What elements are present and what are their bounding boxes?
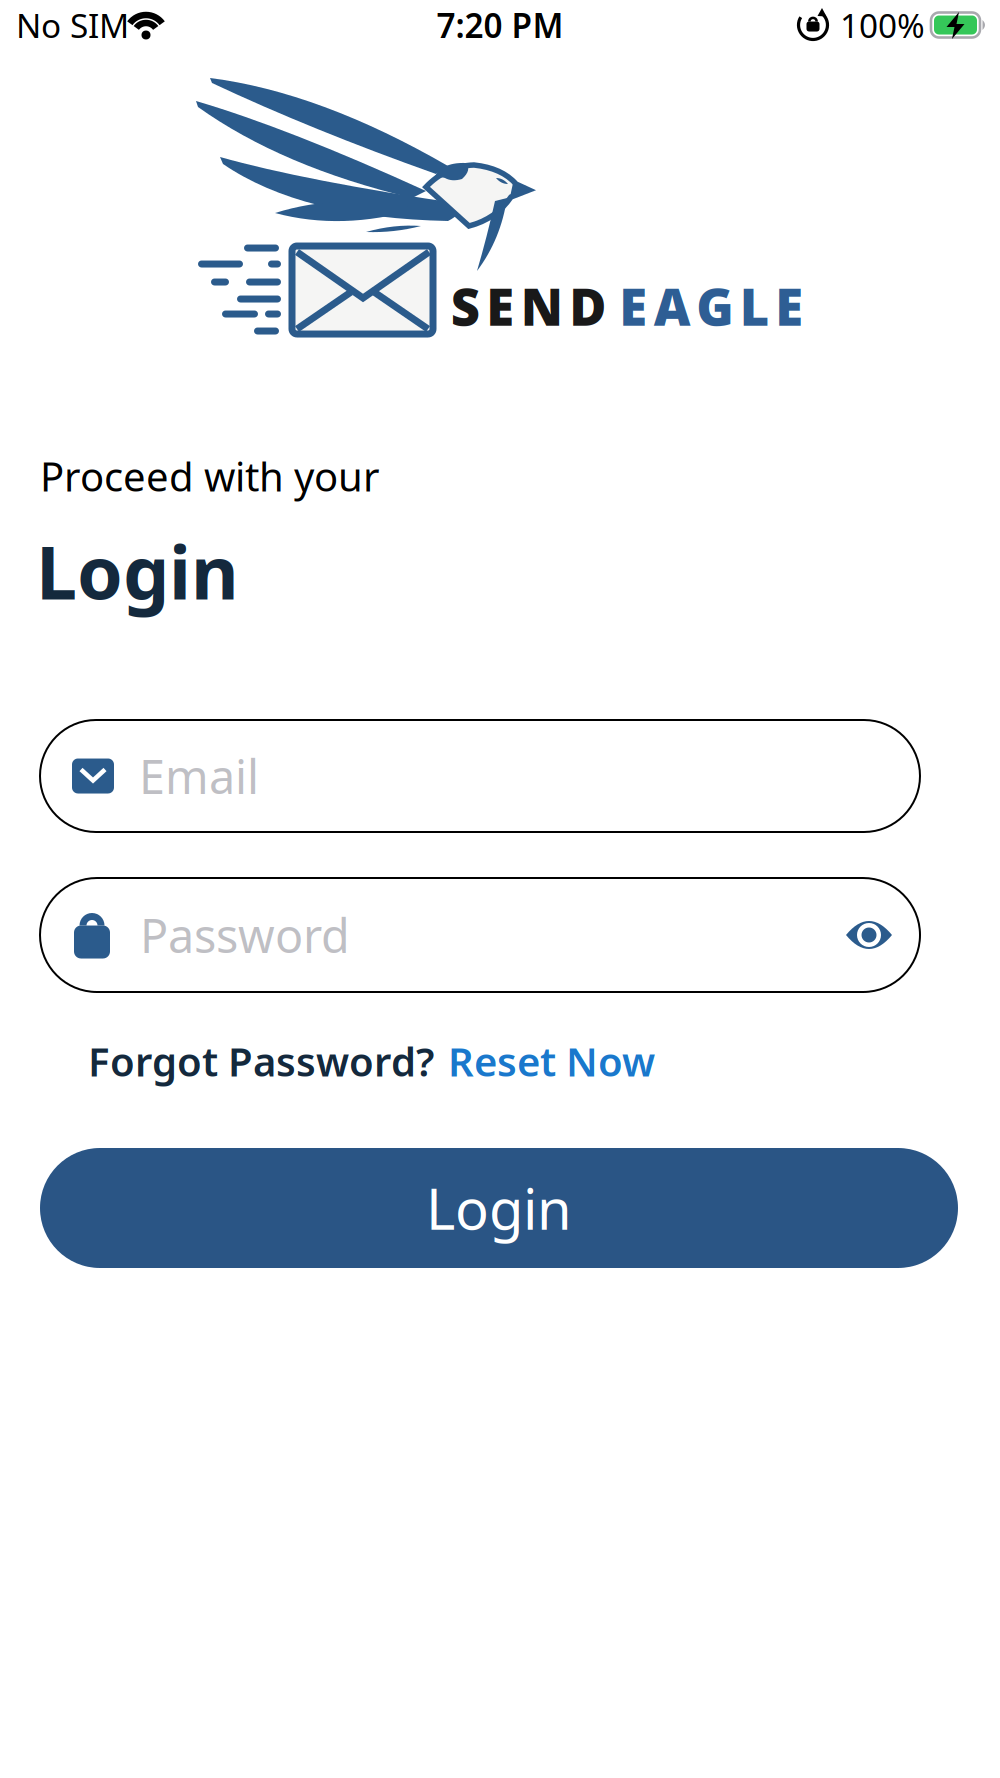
staticText: Login — [426, 1171, 572, 1245]
staticText: Password — [140, 904, 350, 966]
button[interactable]: Show password — [846, 920, 892, 950]
staticText: Proceed with your — [40, 449, 380, 502]
button[interactable]: Email — [40, 720, 920, 832]
staticText: Login — [36, 522, 239, 620]
staticText: SEND — [451, 272, 606, 340]
button[interactable]: Reset Now — [448, 1034, 655, 1087]
staticText: 100% — [840, 3, 925, 47]
staticText: EAGLE — [619, 272, 803, 340]
staticText: Email — [139, 745, 259, 807]
staticText: Reset Now — [448, 1034, 655, 1087]
staticText: 7:20 PM — [436, 3, 563, 47]
button[interactable]: Login — [40, 1148, 958, 1268]
staticText: Forgot Password? — [88, 1034, 434, 1087]
button[interactable]: Password — [40, 878, 920, 992]
staticText: No SIM — [16, 3, 129, 47]
